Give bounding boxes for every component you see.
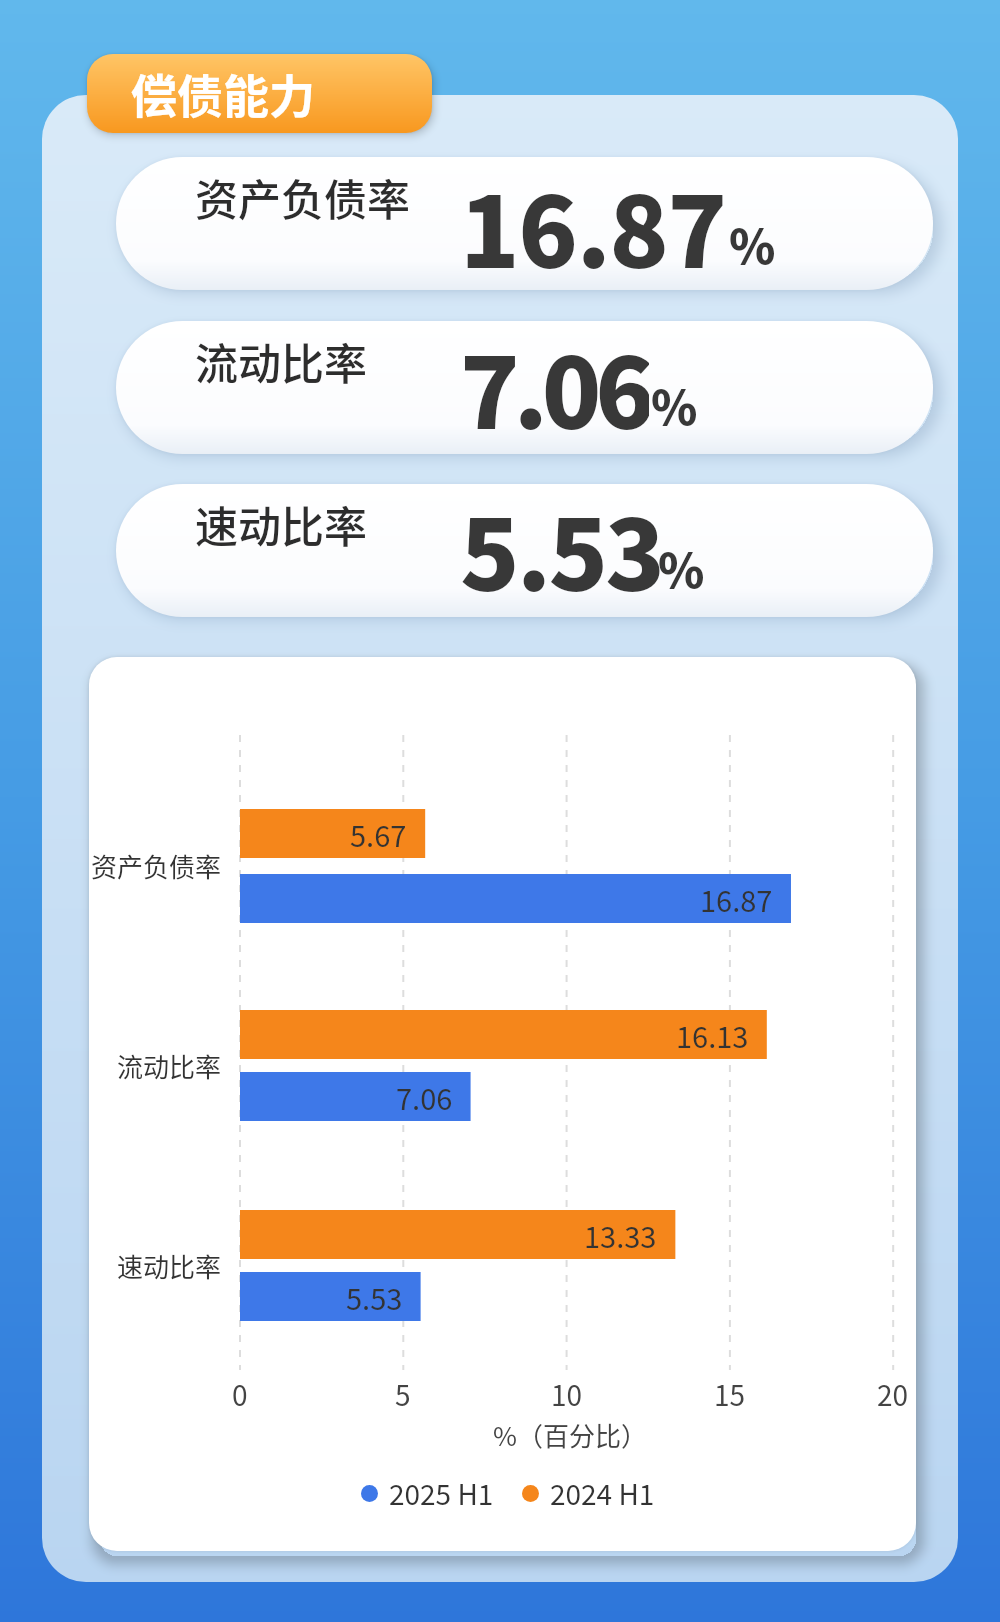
staticText: 10 [551,1374,583,1414]
staticText: 20 [877,1374,909,1414]
staticText: 5.67 [350,813,407,855]
staticText: 16.13 [676,1014,749,1056]
staticText: 速动比率 [117,1247,222,1285]
staticText: 15 [714,1374,746,1414]
button[interactable]: 速动比率 [116,484,933,617]
staticText: %（百分比） [493,1416,647,1454]
staticText: 7.06 [396,1076,453,1118]
staticText: 偿债能力 [131,60,315,127]
button[interactable] [522,1485,539,1502]
staticText: 流动比率 [195,330,367,392]
staticText: 7.06 [460,321,649,448]
staticText: % [651,370,698,438]
staticText: 5.53 [460,484,663,610]
staticText: 13.33 [584,1214,657,1256]
button[interactable]: 偿债能力 [87,54,432,133]
staticText: 0 [232,1374,248,1414]
staticText: 5 [395,1374,411,1414]
button[interactable] [361,1485,378,1502]
staticText: 16.87 [460,157,726,287]
button[interactable]: 资产负债率 [116,157,933,290]
staticText: 流动比率 [117,1047,222,1085]
staticText: % [658,533,705,601]
staticText: 16.87 [700,878,773,920]
staticText: 5.53 [346,1276,403,1318]
staticText: % [729,209,776,277]
staticText: 2024 H1 [550,1473,655,1513]
button[interactable]: 流动比率 [116,321,933,454]
staticText: 资产负债率 [195,166,410,228]
staticText: 资产负债率 [91,847,222,885]
staticText: 2025 H1 [389,1473,494,1513]
staticText: 速动比率 [195,493,367,555]
